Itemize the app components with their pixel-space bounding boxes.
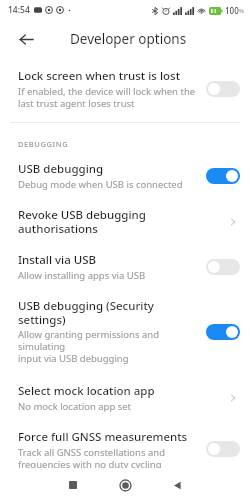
staticText: No mock location app set (18, 400, 132, 413)
button[interactable]: Toggle off (206, 81, 240, 97)
staticText: Revoke USB debugging authorisations (18, 207, 222, 236)
staticText: DEBUGGING (18, 139, 69, 149)
staticText: Lock screen when trust is lost (18, 68, 181, 84)
staticText: Force full GNSS measurements (18, 429, 188, 445)
button[interactable]: Toggle on (206, 324, 240, 340)
button[interactable]: Back (151, 470, 203, 500)
button[interactable]: USB debugging (Security settings) (0, 294, 250, 367)
button[interactable]: Toggle on (206, 168, 240, 184)
staticText: 14:54 (8, 4, 30, 16)
staticText: Developer options (70, 30, 187, 48)
button[interactable]: Revoke USB debugging authorisations (0, 203, 250, 238)
staticText: Allow granting permissions and simulatin… (18, 328, 198, 365)
button[interactable]: Recent apps (47, 470, 99, 500)
button[interactable]: Toggle off (206, 259, 240, 275)
button[interactable]: Home (99, 470, 151, 500)
button[interactable]: Lock screen when trust is lost (0, 58, 250, 112)
staticText: USB debugging (Security settings) (18, 298, 154, 327)
staticText: Select mock location app (18, 383, 155, 399)
button[interactable]: Toggle off (206, 441, 240, 457)
button[interactable]: Back (13, 26, 39, 52)
staticText: Install via USB (18, 252, 97, 268)
staticText: Allow installing apps via USB (18, 269, 146, 282)
staticText: 100 (225, 5, 239, 16)
staticText: If enabled, the device will lock when th… (18, 85, 196, 110)
button[interactable]: Select mock location app (0, 379, 250, 415)
staticText: Debug mode when USB is connected (18, 178, 183, 191)
staticText: USB debugging (18, 161, 104, 177)
button[interactable]: USB debugging (0, 157, 250, 193)
button[interactable]: Install via USB (0, 248, 250, 284)
button[interactable]: Force full GNSS measurements (0, 427, 250, 470)
staticText: % (239, 7, 244, 15)
staticText: Track all GNSS constellations and freque… (18, 446, 166, 468)
